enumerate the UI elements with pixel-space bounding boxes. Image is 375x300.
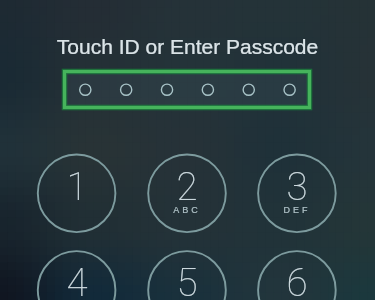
staticText: 2 (148, 164, 226, 209)
staticText: DEF (258, 205, 336, 215)
button[interactable]: 3 (258, 155, 336, 233)
staticText: ABC (148, 205, 226, 215)
button[interactable]: 5 (148, 251, 226, 300)
button[interactable]: 4 (38, 251, 116, 300)
staticText: 4 (38, 260, 116, 300)
staticText: 1 (38, 164, 116, 209)
button[interactable]: 2 (148, 155, 226, 233)
button[interactable]: 1 (38, 155, 116, 233)
staticText: 5 (148, 260, 226, 300)
staticText: Touch ID or Enter Passcode (0, 35, 375, 58)
staticText: 3 (258, 164, 336, 209)
staticText: 6 (258, 260, 336, 300)
button[interactable]: 6 (258, 251, 336, 300)
button[interactable]: Passcode field (63, 70, 311, 109)
